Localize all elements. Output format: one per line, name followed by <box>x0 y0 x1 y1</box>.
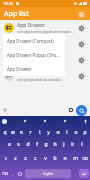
staticText: d <box>26 141 30 148</box>
button[interactable]: w <box>9 126 17 138</box>
button[interactable]: App options <box>76 71 86 81</box>
staticText: App Drawer Popup (Shortcuts) <box>7 52 61 58</box>
button[interactable]: o <box>71 126 80 138</box>
button[interactable]: n <box>60 150 70 167</box>
button[interactable]: h <box>50 138 59 150</box>
button[interactable]: Drive <box>0 36 90 52</box>
staticText: i <box>66 129 68 136</box>
staticText: s <box>17 141 20 148</box>
staticText: com.appinventor.appdrawercompact... <box>17 30 74 34</box>
button[interactable]: k <box>68 138 77 150</box>
staticText: App Drawer <box>7 66 32 72</box>
staticText: b <box>53 155 57 162</box>
staticText: a <box>8 141 11 148</box>
button[interactable]: Voice input <box>83 119 88 124</box>
button[interactable]: Enter <box>79 169 89 178</box>
staticText: Drive <box>17 38 30 45</box>
staticText: 18:26 <box>3 1 14 6</box>
button[interactable]: p <box>80 126 89 138</box>
staticText: v <box>44 155 47 162</box>
button[interactable]: j <box>59 138 68 150</box>
button[interactable]: App Drawer <box>0 20 90 36</box>
button[interactable]: Calendar <box>0 68 90 84</box>
button[interactable]: Clear <box>68 107 74 113</box>
staticText: n <box>63 155 67 162</box>
button[interactable]: r <box>26 126 35 138</box>
button[interactable]: z <box>10 150 20 167</box>
button[interactable]: App options <box>76 39 86 49</box>
staticText: ⇧ <box>4 156 8 161</box>
button[interactable]: Search <box>76 105 87 116</box>
staticText: App Drawer <box>17 54 45 61</box>
button[interactable]: Space <box>25 169 71 178</box>
button[interactable] <box>43 119 47 123</box>
button[interactable]: Language <box>16 169 23 178</box>
button[interactable] <box>23 119 27 123</box>
staticText: z <box>14 155 17 162</box>
button[interactable]: App Drawer (Compact) <box>3 34 65 48</box>
staticText: c <box>34 155 37 162</box>
staticText: App Drawer (Compact) <box>7 38 54 44</box>
button[interactable]: t <box>35 126 44 138</box>
staticText: Calendar <box>17 70 39 77</box>
button[interactable]: d <box>23 138 32 150</box>
button[interactable]: i <box>62 126 71 138</box>
button[interactable]: . <box>73 169 79 178</box>
staticText: e <box>20 129 23 136</box>
button[interactable]: g <box>41 138 50 150</box>
staticText: t <box>39 129 41 136</box>
button[interactable]: b <box>50 150 60 167</box>
staticText: com.google.android.calendar <box>17 78 62 82</box>
staticText: , <box>12 171 14 176</box>
staticText: r <box>29 129 32 136</box>
staticText: ⌫ <box>82 156 88 161</box>
button[interactable]: u <box>53 126 62 138</box>
staticText: . <box>75 171 77 176</box>
staticText: w <box>11 129 15 136</box>
staticText: g <box>44 141 48 148</box>
button[interactable]: y <box>44 126 53 138</box>
staticText: English <box>43 172 54 176</box>
staticText: l <box>81 141 83 148</box>
button[interactable]: Emoji <box>2 119 7 124</box>
staticText: p <box>83 129 87 136</box>
button[interactable]: s <box>14 138 23 150</box>
button[interactable]: App Drawer Popup (Shortcuts) <box>3 48 65 62</box>
button[interactable]: Settings <box>76 9 86 19</box>
staticText: App list <box>4 9 29 19</box>
button[interactable]: App options <box>76 23 86 33</box>
staticText: x <box>24 155 27 162</box>
button[interactable]: c <box>30 150 40 167</box>
staticText: q <box>3 129 7 136</box>
staticText: u <box>56 129 60 136</box>
button[interactable]: f <box>32 138 41 150</box>
button[interactable]: e <box>17 126 26 138</box>
button[interactable]: v <box>40 150 50 167</box>
button[interactable]: x <box>20 150 30 167</box>
button[interactable]: l <box>77 138 86 150</box>
staticText: h <box>53 141 57 148</box>
button[interactable]: a <box>4 138 14 150</box>
staticText: ?123 <box>2 172 9 176</box>
button[interactable]: Shift <box>1 150 10 167</box>
button[interactable]: Backspace <box>80 150 89 167</box>
staticText: m <box>73 155 78 162</box>
button[interactable]: App options <box>76 55 86 65</box>
button[interactable]: m <box>70 150 80 167</box>
staticText: j <box>63 141 65 148</box>
staticText: y <box>47 129 50 136</box>
button[interactable]: ?123 <box>1 169 10 178</box>
staticText: o <box>74 129 78 136</box>
button[interactable]: App Drawer <box>0 52 90 68</box>
button[interactable]: , <box>10 169 16 178</box>
staticText: App Drawer <box>17 22 45 29</box>
staticText: f <box>36 141 38 148</box>
button[interactable]: q <box>1 126 9 138</box>
staticText: k <box>71 141 74 148</box>
button[interactable]: App Drawer <box>3 62 65 76</box>
button[interactable] <box>63 119 67 123</box>
